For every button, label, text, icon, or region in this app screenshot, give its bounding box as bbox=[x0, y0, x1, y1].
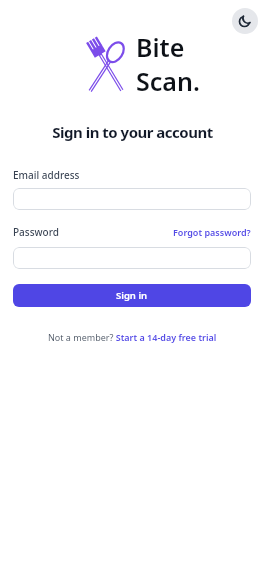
button[interactable] bbox=[13, 188, 251, 210]
button[interactable]: Sign in bbox=[13, 284, 251, 307]
staticText: Sign in to your account bbox=[0, 122, 265, 142]
button[interactable]: Forgot password? bbox=[173, 226, 251, 238]
staticText: Bite bbox=[136, 30, 185, 64]
staticText: Not a member? Start a 14-day free trial bbox=[48, 331, 217, 343]
button[interactable] bbox=[13, 247, 251, 269]
button[interactable]: Not a member? Start a 14-day free trial bbox=[0, 331, 265, 343]
staticText: Scan. bbox=[136, 64, 200, 98]
button[interactable] bbox=[232, 8, 258, 34]
staticText: Sign in bbox=[116, 289, 148, 302]
staticText: Email address bbox=[13, 168, 80, 182]
staticText: Password bbox=[13, 225, 59, 239]
